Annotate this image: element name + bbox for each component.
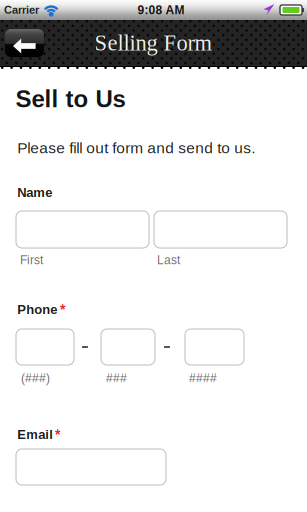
staticText: Last bbox=[157, 253, 180, 267]
staticText: ### bbox=[106, 371, 127, 385]
staticText: (###) bbox=[21, 371, 50, 385]
staticText: * bbox=[60, 302, 65, 317]
staticText: Carrier bbox=[4, 4, 39, 16]
staticText: #### bbox=[189, 371, 217, 385]
staticText: First bbox=[20, 253, 43, 267]
button[interactable]: Back bbox=[5, 29, 44, 57]
staticText: Please fill out form and send to us. bbox=[17, 139, 255, 157]
staticText: Name bbox=[17, 185, 52, 200]
staticText: 9:08 AM bbox=[137, 3, 184, 17]
staticText: Email bbox=[17, 427, 53, 442]
staticText: Selling Form bbox=[94, 30, 212, 55]
staticText: Sell to Us bbox=[15, 86, 125, 112]
staticText: Phone bbox=[17, 302, 57, 317]
staticText: * bbox=[55, 427, 60, 442]
